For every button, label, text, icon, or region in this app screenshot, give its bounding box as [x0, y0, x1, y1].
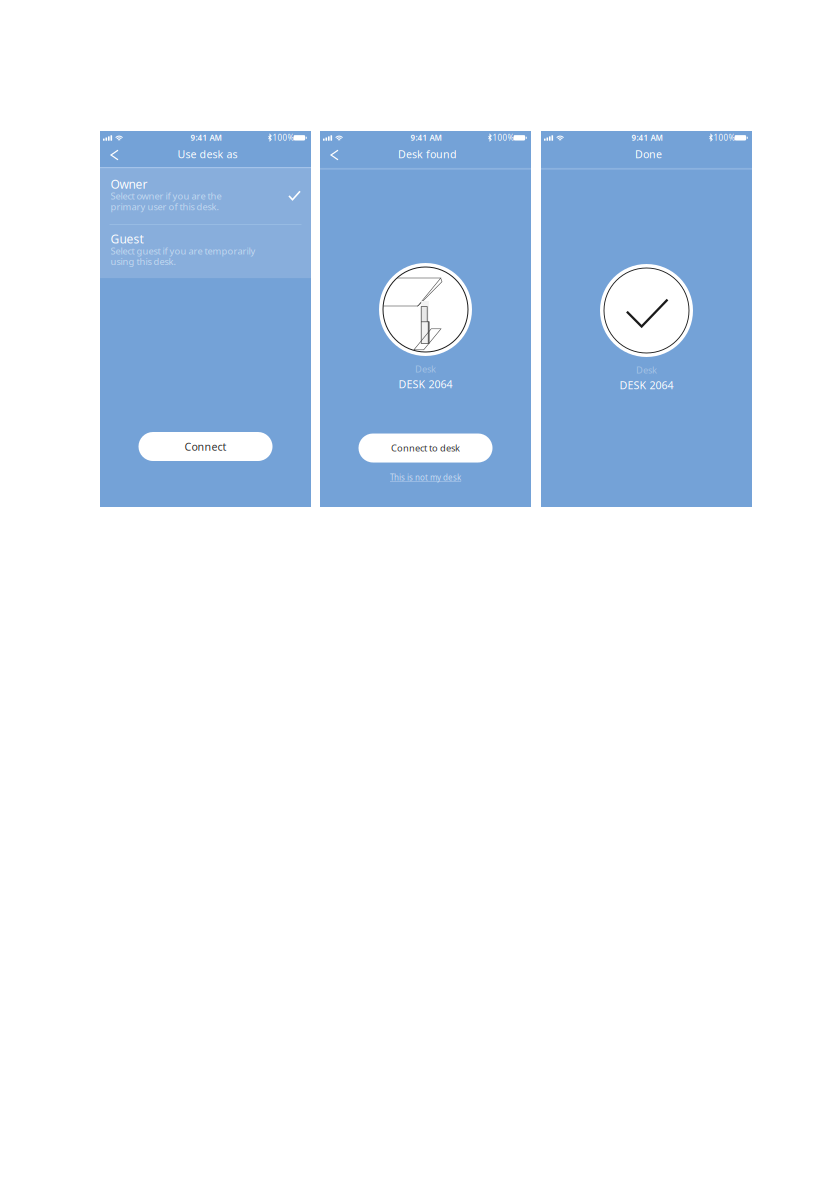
staticText: Desk: [415, 363, 436, 375]
staticText: Owner: [110, 176, 147, 192]
staticText: primary user of this desk.: [110, 200, 219, 213]
button[interactable]: Connect to desk: [358, 433, 492, 462]
staticText: 9:41 AM: [410, 132, 441, 143]
staticText: Done: [635, 147, 662, 161]
staticText: This is not my desk: [390, 472, 461, 483]
staticText: using this desk.: [110, 255, 176, 268]
staticText: Connect: [184, 439, 226, 454]
button[interactable]: Back: [101, 144, 127, 166]
staticText: DESK 2064: [398, 377, 452, 391]
staticText: Connect to desk: [391, 442, 460, 454]
button[interactable]: Connect: [138, 432, 272, 461]
button[interactable]: This is not my desk: [380, 471, 470, 483]
staticText: Select guest if you are temporarily: [110, 245, 255, 257]
button[interactable]: Guest: [100, 225, 311, 278]
staticText: 9:41 AM: [190, 132, 221, 143]
staticText: Desk: [636, 364, 657, 376]
staticText: 100%: [492, 132, 514, 143]
staticText: DESK 2064: [619, 378, 673, 392]
staticText: 100%: [272, 132, 294, 143]
button[interactable]: Owner: [100, 168, 311, 224]
button[interactable]: Back: [321, 144, 347, 166]
staticText: Desk found: [398, 147, 457, 161]
staticText: Use desk as: [177, 147, 237, 161]
staticText: Guest: [110, 231, 143, 247]
staticText: 9:41 AM: [631, 132, 662, 143]
staticText: Select owner if you are the: [110, 190, 221, 202]
staticText: 100%: [713, 132, 735, 143]
